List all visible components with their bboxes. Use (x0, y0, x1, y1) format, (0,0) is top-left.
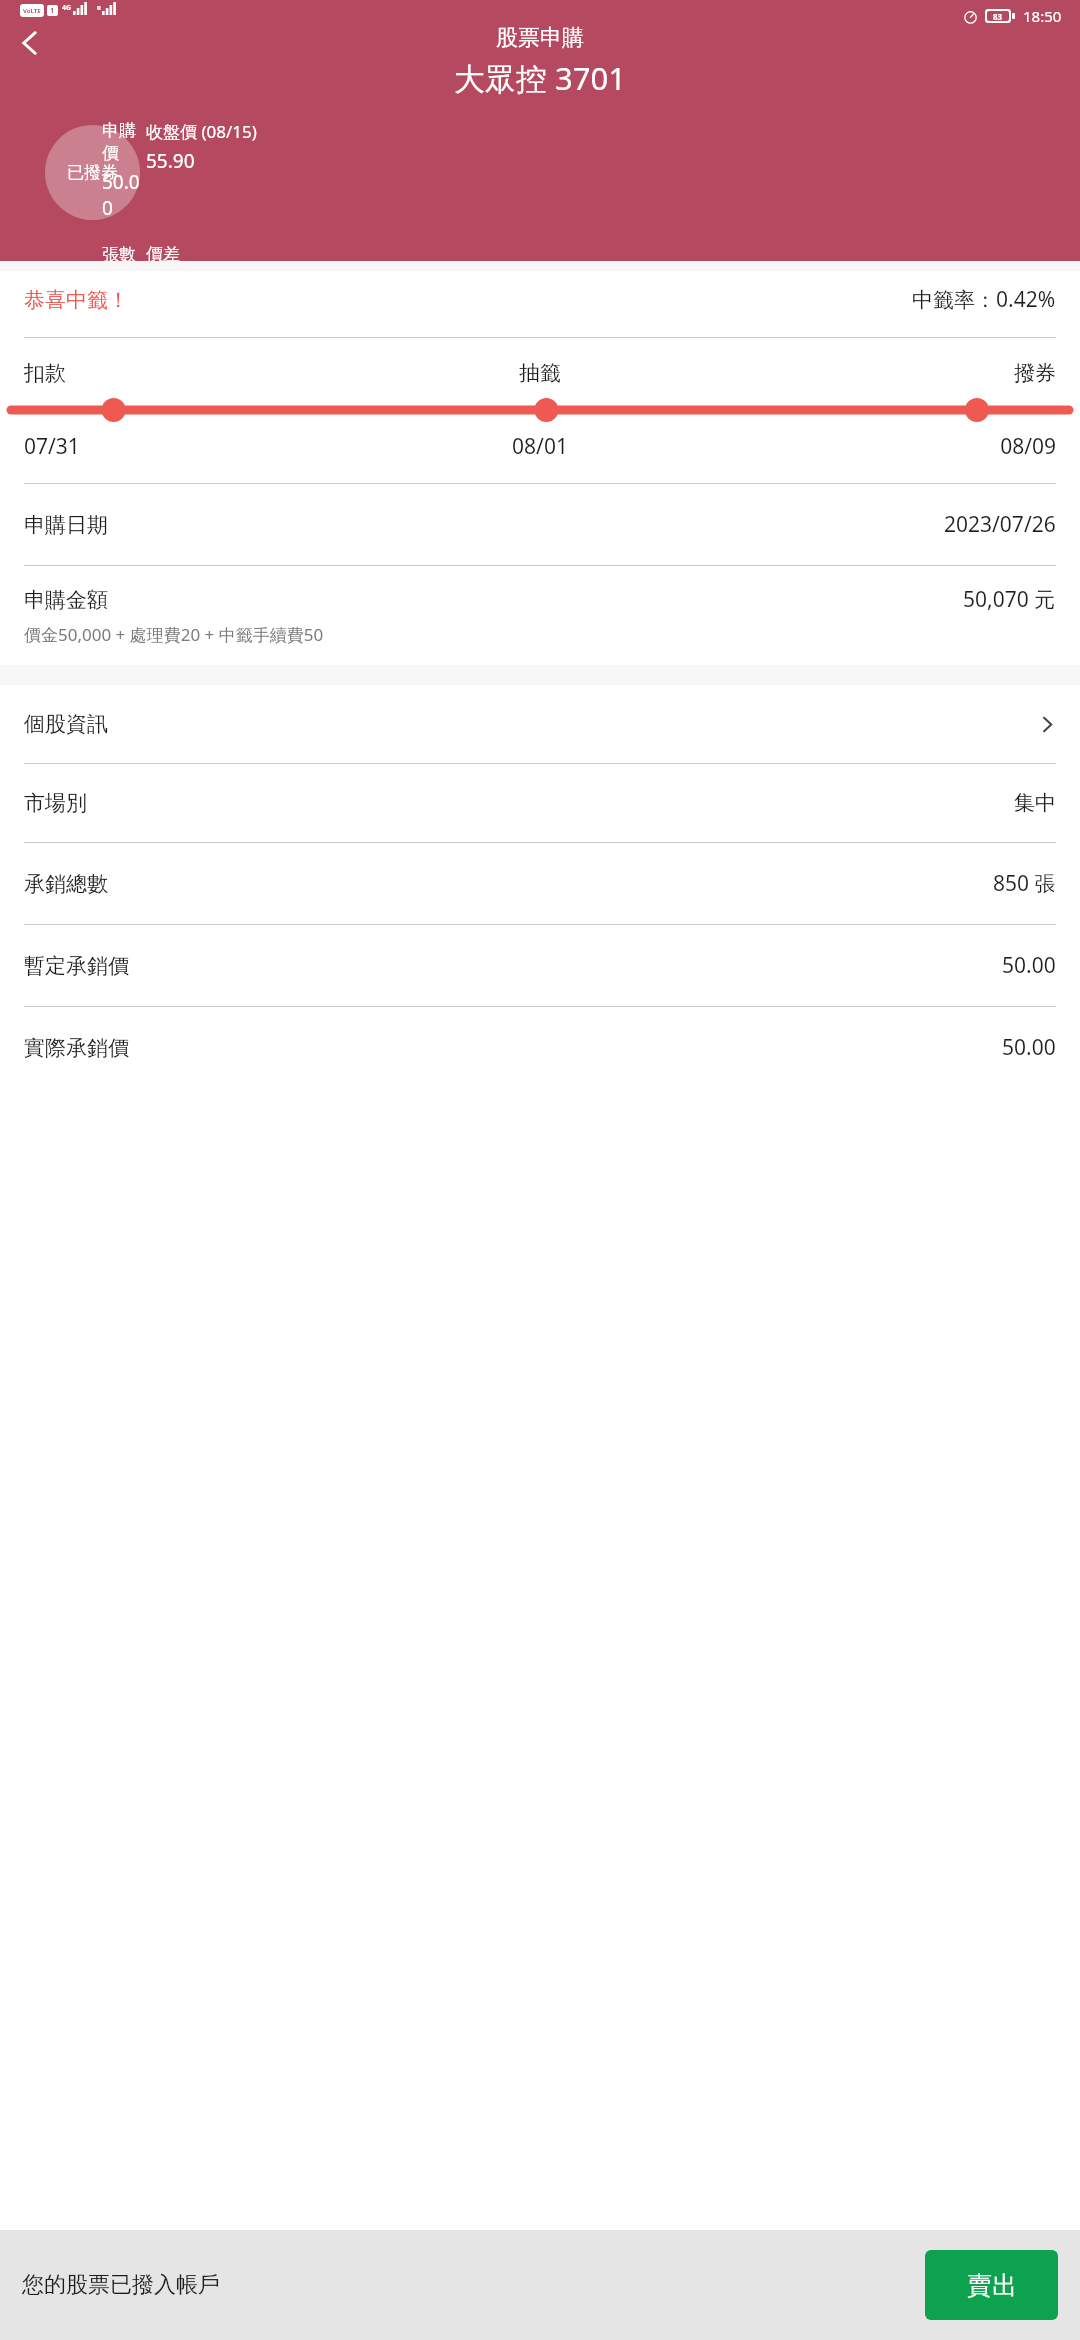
staticText: 實際承銷價 (24, 1035, 129, 1061)
staticText: 4G (62, 3, 72, 13)
staticText: 扣款 (24, 360, 368, 386)
button[interactable]: 承銷總數 (0, 843, 1080, 924)
staticText: 市場別 (24, 790, 87, 816)
staticText: VoLTE (23, 7, 41, 15)
staticText: 50.00 (1002, 951, 1056, 980)
button[interactable]: 賣出 (925, 2250, 1058, 2320)
staticText: 申購金額 (24, 587, 108, 613)
staticText: 83 (993, 11, 1003, 21)
staticText: 55.90 (146, 148, 195, 174)
staticText: 抽籤 (368, 360, 712, 386)
staticText: 承銷總數 (24, 871, 108, 897)
staticText: 張數 (102, 244, 136, 265)
staticText: 1 (102, 270, 113, 296)
staticText: 申購日期 (24, 512, 108, 538)
staticText: 收盤價 (08/15) (146, 120, 257, 143)
staticText: 股票申購 (0, 24, 1080, 52)
staticText: 申購價 (102, 120, 146, 164)
staticText: 08/01 (368, 432, 712, 461)
staticText: 個股資訊 (24, 711, 108, 737)
staticText: 50.00 (1002, 1033, 1056, 1062)
button[interactable]: 市場別 (0, 764, 1080, 842)
staticText: 1 (50, 6, 55, 16)
staticText: 18:50 (1023, 6, 1062, 26)
staticText: 您的股票已撥入帳戶 (22, 2271, 220, 2299)
button[interactable]: 暫定承銷價 (0, 925, 1080, 1006)
staticText: 2023/07/26 (944, 510, 1056, 539)
staticText: 暫定承銷價 (24, 953, 129, 979)
staticText: 價差 (146, 244, 180, 265)
staticText: 中籤率：0.42% (912, 285, 1056, 314)
button[interactable]: 申購金額 (0, 566, 1080, 665)
button[interactable]: 個股資訊 (0, 685, 1080, 763)
staticText: 撥券 (712, 360, 1056, 386)
button[interactable]: Back (4, 17, 56, 69)
staticText: 集中 (1014, 790, 1056, 816)
button[interactable]: 申購日期 (0, 484, 1080, 565)
button[interactable]: 實際承銷價 (0, 1007, 1080, 1088)
staticText: 價金50,000 + 處理費20 + 中籤手續費50 (24, 623, 324, 646)
staticText: 大眾控 3701 (0, 57, 1080, 99)
staticText: 08/09 (712, 432, 1056, 461)
staticText: 已撥券 (67, 162, 118, 183)
staticText: 恭喜中籤！ (24, 287, 129, 313)
staticText: 50.00 (102, 169, 146, 221)
staticText: 850 張 (993, 869, 1056, 898)
staticText: 賣出 (967, 2270, 1017, 2301)
staticText: R (97, 4, 101, 12)
staticText: 50,070 元 (963, 585, 1056, 614)
staticText: 07/31 (24, 432, 368, 461)
